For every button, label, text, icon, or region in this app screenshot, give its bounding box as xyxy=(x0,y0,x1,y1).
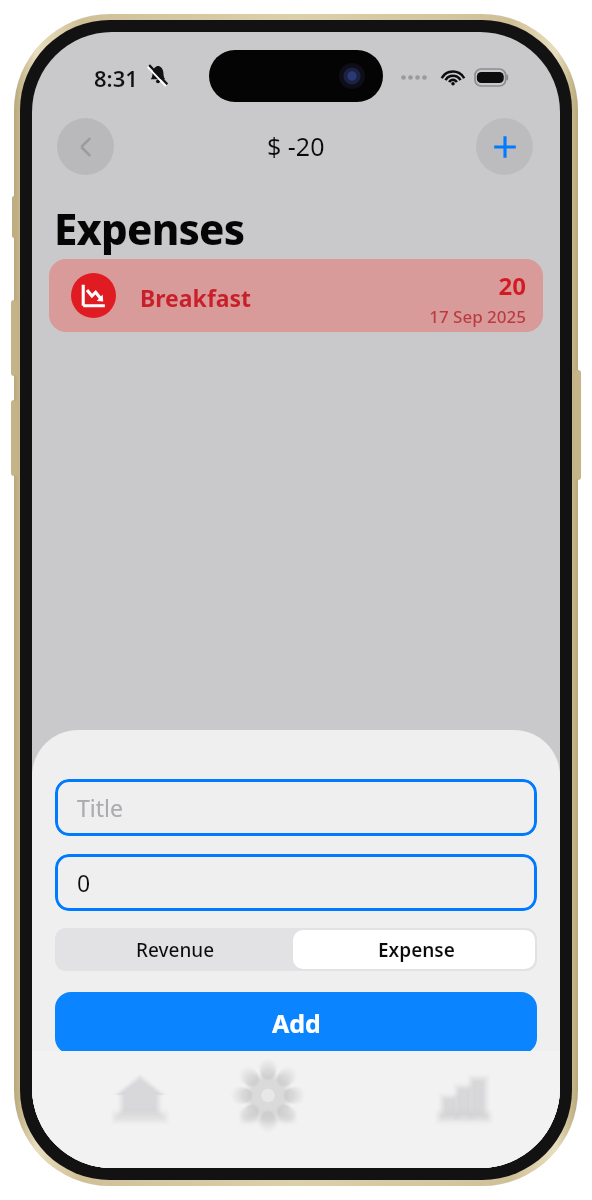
button[interactable]: Settings tab xyxy=(228,1067,308,1129)
button[interactable]: Reports tab xyxy=(424,1067,504,1129)
staticText: 20 xyxy=(498,269,526,302)
button[interactable]: Expense xyxy=(295,928,537,971)
staticText: Title xyxy=(77,792,123,823)
staticText: Expenses xyxy=(54,200,245,257)
button[interactable]: 0 xyxy=(55,854,537,911)
staticText: Add xyxy=(272,1006,321,1040)
button[interactable]: Settings tab xyxy=(228,1067,308,1129)
staticText: Breakfast xyxy=(140,282,252,313)
staticText: 17 Sep 2025 xyxy=(429,305,526,328)
staticText: $ -20 xyxy=(267,129,325,163)
button[interactable]: Add xyxy=(55,992,537,1054)
button[interactable]: Reports tab xyxy=(424,1067,504,1129)
button[interactable]: Breakfast xyxy=(49,259,543,332)
button[interactable]: Revenue xyxy=(55,928,295,971)
staticText: 8:31 xyxy=(94,63,138,93)
button[interactable]: Back xyxy=(57,118,114,175)
button[interactable]: Home tab xyxy=(100,1067,180,1129)
staticText: Expense xyxy=(378,937,455,963)
button[interactable]: Home tab xyxy=(100,1067,180,1129)
staticText: 0 xyxy=(77,867,91,898)
button[interactable]: Title xyxy=(55,779,537,836)
button[interactable]: Add expense xyxy=(476,118,533,175)
staticText: Revenue xyxy=(136,937,215,963)
